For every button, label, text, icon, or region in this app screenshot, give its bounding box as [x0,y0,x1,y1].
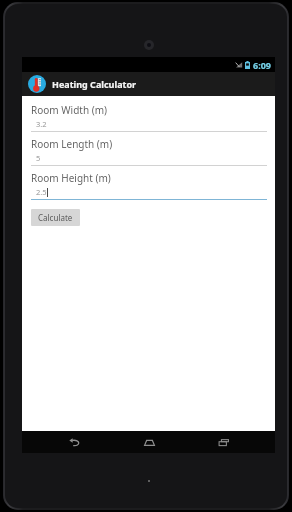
staticText: 2.5 [36,187,47,197]
staticText: 5 [36,153,41,163]
button[interactable]: Calculate [31,209,80,226]
staticText: Room Height (m) [31,171,111,185]
button[interactable]: Room Length (m) [31,137,267,171]
staticText: 6:09 [253,59,271,71]
staticText: 3.2 [36,119,47,129]
button[interactable]: Back [52,431,96,453]
staticText: Room Width (m) [31,103,108,117]
button[interactable]: Room Height (m) [31,171,267,205]
staticText: Calculate [38,212,73,223]
staticText: Heating Calculator [52,78,137,90]
button[interactable]: Home [127,431,171,453]
button[interactable]: Heating Calculator icon [28,75,46,93]
button[interactable]: Recent apps [201,431,245,453]
staticText: Room Length (m) [31,137,113,151]
button[interactable]: Room Width (m) [31,103,267,137]
